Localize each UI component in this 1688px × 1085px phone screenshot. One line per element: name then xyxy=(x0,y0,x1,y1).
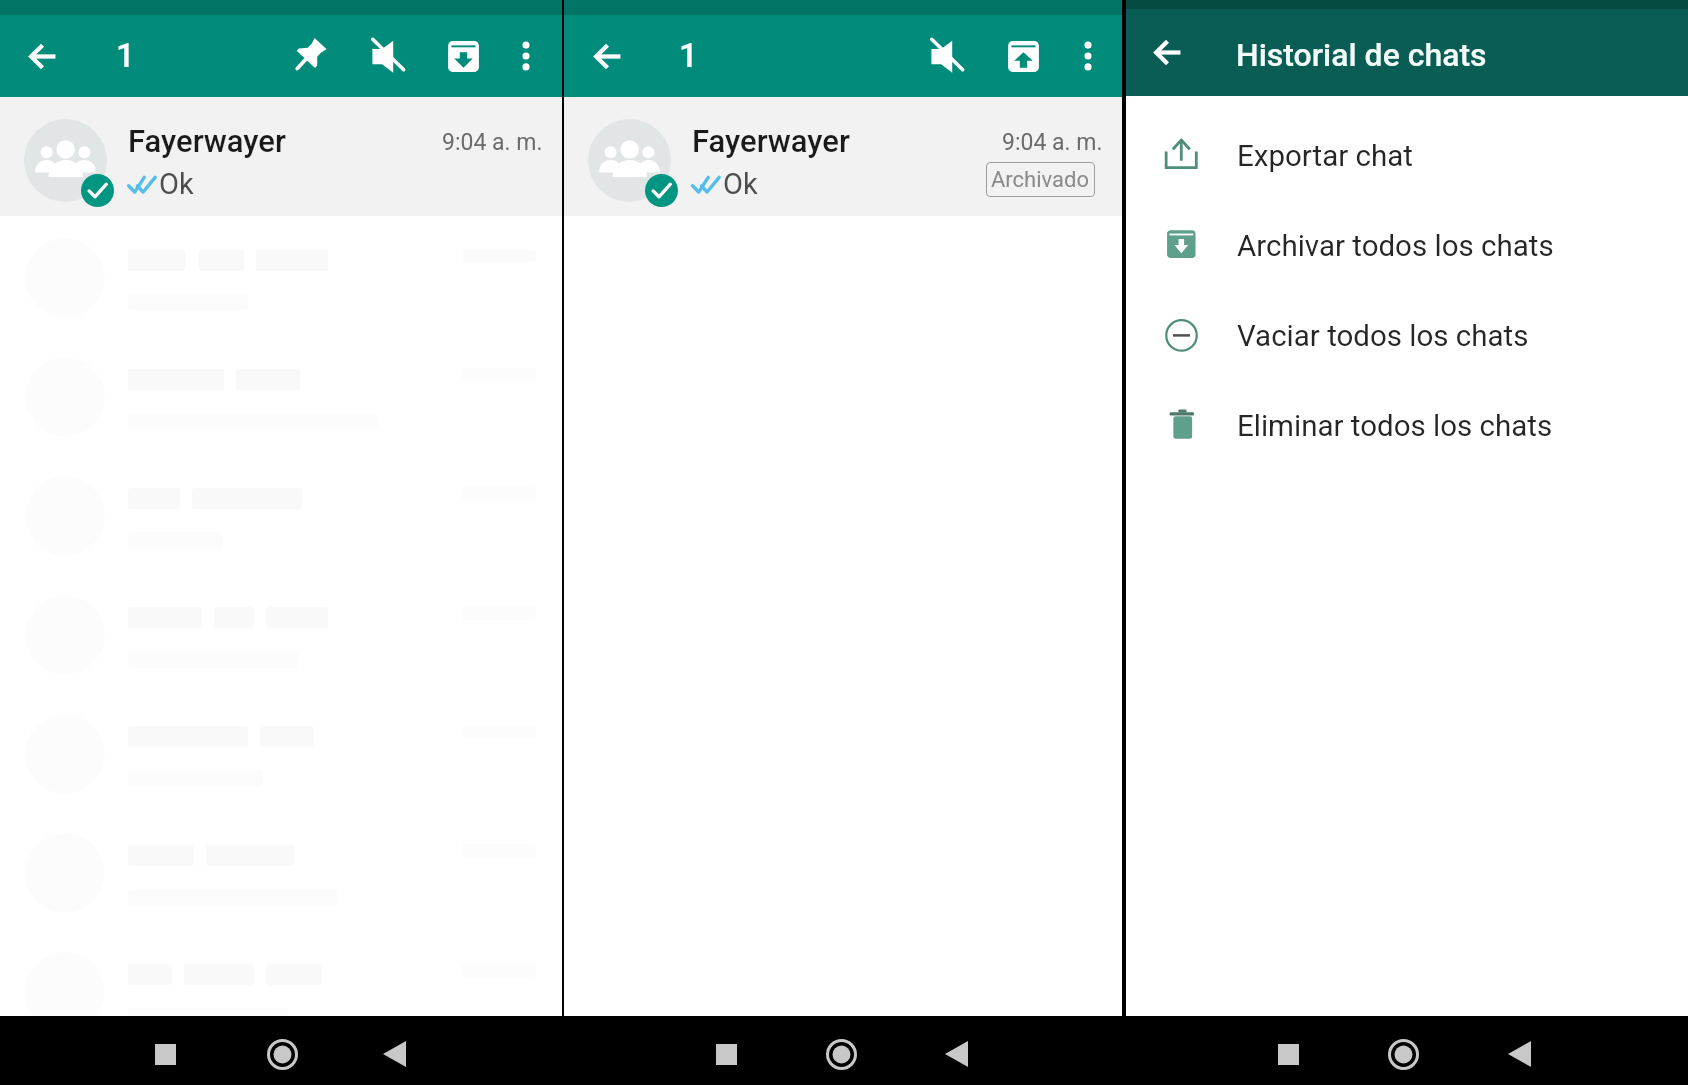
button[interactable]: Mute notifications xyxy=(356,24,420,88)
staticText: Archivar todos los chats xyxy=(1237,229,1554,264)
button[interactable]: Recent apps xyxy=(139,1028,191,1080)
button[interactable]: Back xyxy=(575,24,639,88)
button[interactable]: Archive chat xyxy=(431,24,495,88)
staticText: 9:04 a. m. xyxy=(442,129,543,156)
staticText: Eliminar todos los chats xyxy=(1237,409,1553,444)
staticText: 1 xyxy=(116,36,135,75)
staticText: Ok xyxy=(159,167,194,201)
button[interactable]: Fayerwayer xyxy=(564,97,1122,216)
button[interactable]: Vaciar todos los chats xyxy=(1126,291,1688,381)
staticText: Archivado xyxy=(991,167,1090,193)
button[interactable]: Recent apps xyxy=(1262,1028,1314,1080)
staticText: Exportar chat xyxy=(1237,139,1413,174)
button[interactable]: Eliminar todos los chats xyxy=(1126,381,1688,471)
button[interactable]: Pin chat xyxy=(279,24,343,88)
button[interactable]: Back xyxy=(930,1028,982,1080)
staticText: Vaciar todos los chats xyxy=(1237,319,1529,354)
button[interactable]: More options xyxy=(498,28,554,84)
button[interactable]: Back xyxy=(1493,1028,1545,1080)
staticText: Fayerwayer xyxy=(692,123,850,159)
button[interactable]: Recent apps xyxy=(700,1028,752,1080)
button[interactable]: Exportar chat xyxy=(1126,111,1688,201)
staticText: Historial de chats xyxy=(1236,36,1487,74)
button[interactable]: Unarchive chat xyxy=(991,24,1055,88)
staticText: 1 xyxy=(679,36,698,75)
button[interactable]: Mute notifications xyxy=(915,24,979,88)
button[interactable]: Back xyxy=(368,1028,420,1080)
button[interactable]: Home xyxy=(1377,1028,1429,1080)
button[interactable]: Back xyxy=(10,24,74,88)
staticText: Ok xyxy=(723,167,758,201)
button[interactable]: Home xyxy=(256,1028,308,1080)
button[interactable]: Home xyxy=(815,1028,867,1080)
staticText: 9:04 a. m. xyxy=(1002,129,1103,156)
button[interactable]: Back xyxy=(1135,20,1199,84)
staticText: Fayerwayer xyxy=(128,123,286,159)
button[interactable]: Fayerwayer xyxy=(0,97,562,216)
button[interactable]: Archivar todos los chats xyxy=(1126,201,1688,291)
button[interactable]: More options xyxy=(1060,28,1116,84)
